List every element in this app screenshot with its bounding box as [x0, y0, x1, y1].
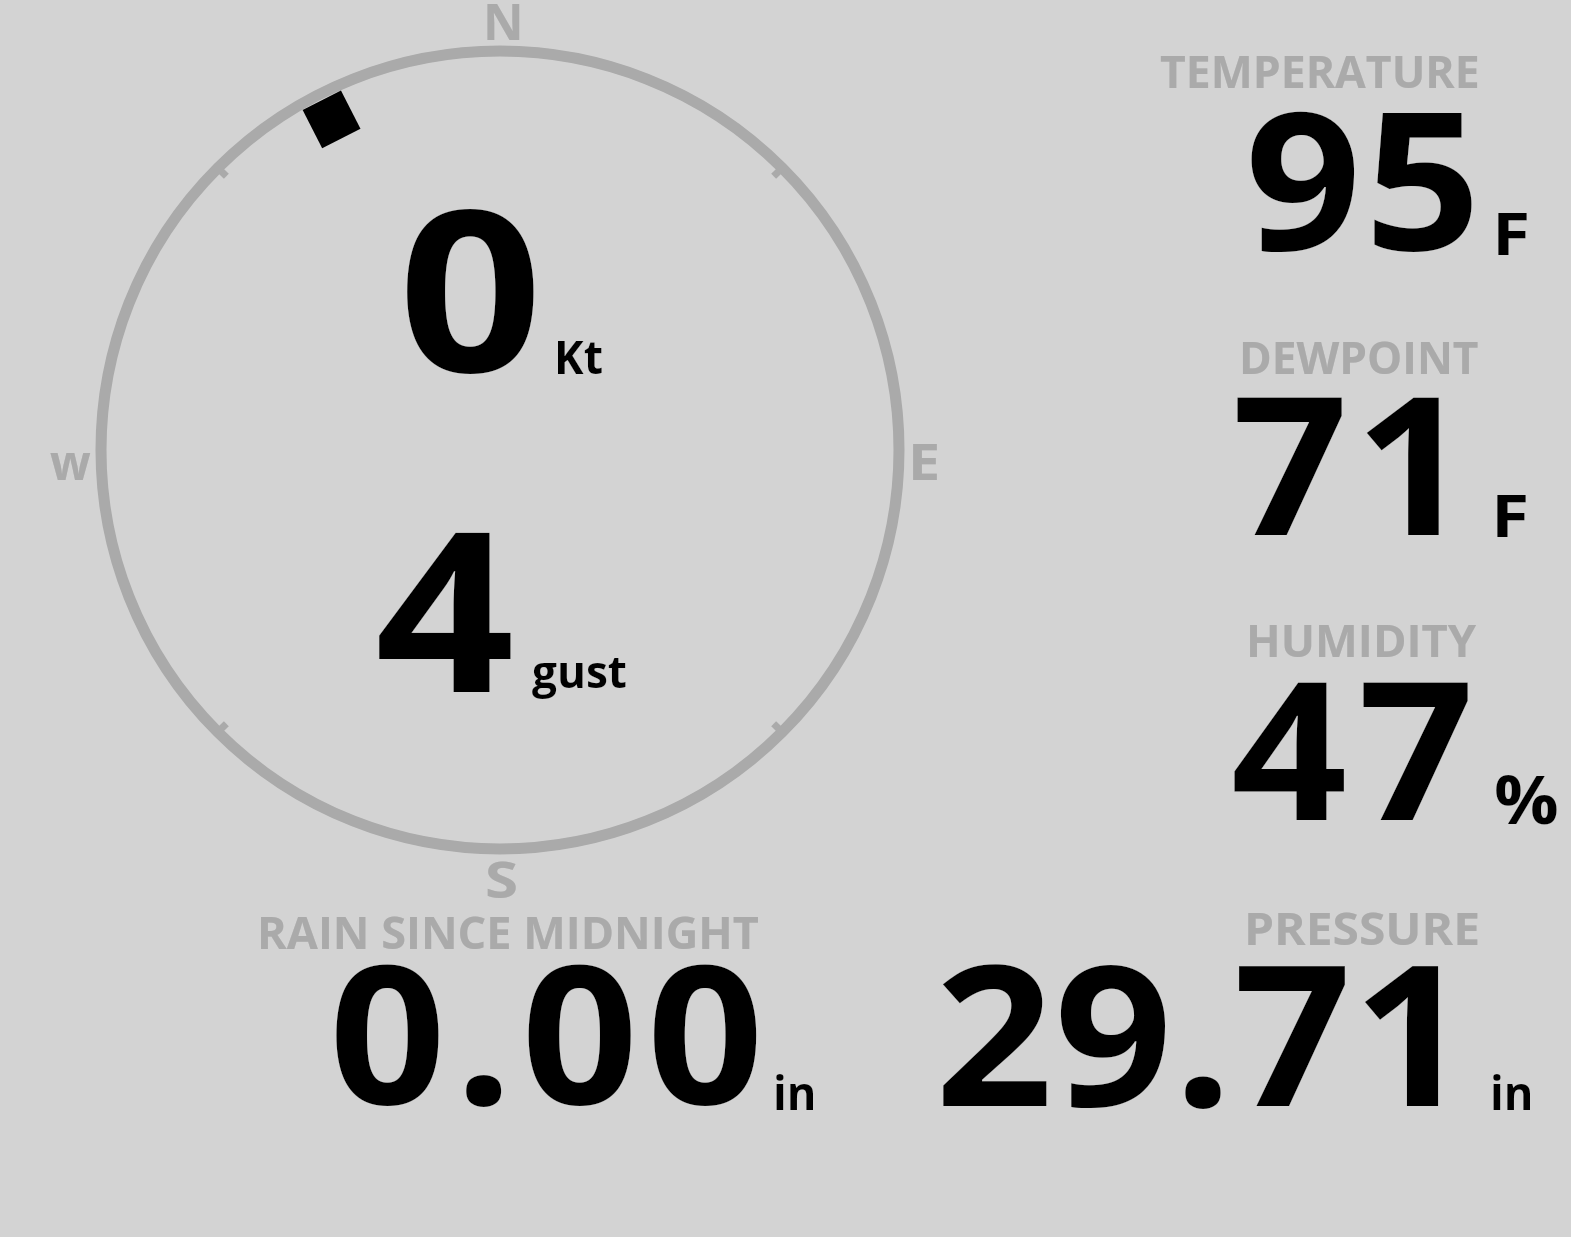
button[interactable]: Pressure 29.71 in — [900, 895, 1571, 1125]
staticText: w — [50, 427, 91, 495]
staticText: F — [1492, 192, 1531, 272]
staticText: Kt — [554, 325, 603, 388]
staticText: % — [1494, 753, 1559, 843]
staticText: 29.71 — [935, 898, 1472, 1164]
button[interactable]: Wind direction and speed — [40, 0, 960, 905]
staticText: E — [908, 427, 941, 495]
staticText: PRESSURE — [1244, 897, 1480, 958]
staticText: HUMIDITY — [1246, 609, 1477, 670]
staticText: F — [1491, 474, 1530, 554]
staticText: DEWPOINT — [1239, 326, 1479, 387]
staticText: 4 — [375, 455, 515, 757]
staticText: RAIN SINCE MIDNIGHT — [257, 901, 759, 962]
staticText: in — [773, 1061, 817, 1124]
staticText: in — [1490, 1061, 1534, 1124]
staticText: 47 — [1231, 615, 1485, 876]
staticText: S — [485, 845, 519, 913]
staticText: TEMPERATURE — [1160, 40, 1480, 101]
staticText: 95 — [1245, 45, 1485, 306]
staticText: 0 — [398, 132, 543, 438]
button[interactable]: Dewpoint 71 F — [1000, 325, 1571, 555]
button[interactable]: Rain since midnight 0.00 in — [220, 895, 840, 1125]
staticText: 71 — [1232, 330, 1478, 591]
button[interactable]: Humidity 47 percent — [1000, 608, 1571, 838]
staticText: gust — [532, 640, 627, 701]
staticText: N — [483, 0, 524, 55]
button[interactable]: Temperature 95 F — [1000, 40, 1571, 270]
staticText: 0.00 — [329, 898, 773, 1161]
